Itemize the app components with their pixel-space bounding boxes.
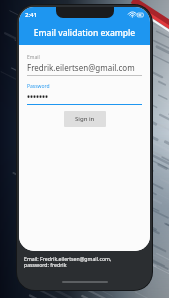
staticText: Email validation example	[19, 27, 150, 39]
button[interactable]: Sign in	[64, 111, 106, 127]
staticText: Email: Fredrik.eilertsen@gmail.com, pass…	[24, 255, 120, 269]
staticText: Email	[27, 54, 40, 61]
button[interactable]: Email	[27, 54, 142, 76]
staticText: Password	[27, 83, 50, 90]
staticText: Sign in	[75, 115, 95, 123]
staticText: •••••••	[27, 91, 49, 102]
button[interactable]: Password	[27, 83, 142, 105]
staticText: 2:41	[25, 11, 37, 19]
staticText: Fredrik.eilertsen@gmail.com	[27, 62, 135, 73]
